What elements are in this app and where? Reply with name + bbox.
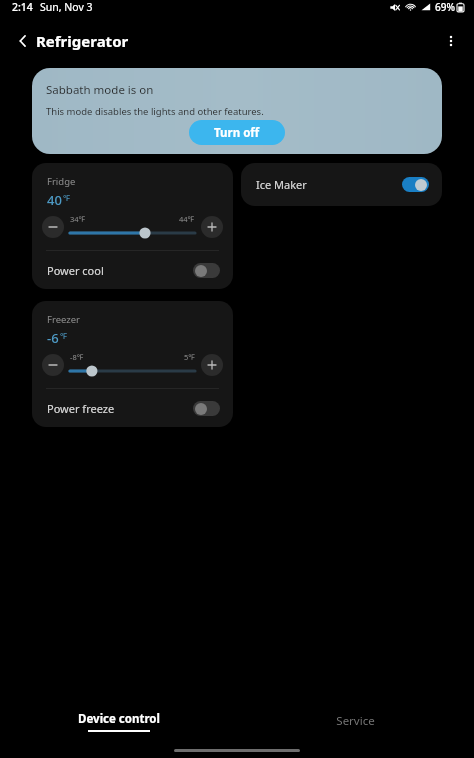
staticText: Fridge bbox=[47, 175, 76, 188]
staticText: Service bbox=[336, 713, 375, 729]
staticText: -6 bbox=[47, 329, 59, 347]
button[interactable]: Power freeze bbox=[32, 389, 233, 427]
button[interactable]: Increase bbox=[201, 216, 223, 238]
staticText: 44℉ bbox=[179, 214, 195, 224]
staticText: Power freeze bbox=[47, 401, 115, 416]
staticText: Sun, Nov 3 bbox=[40, 0, 93, 14]
button[interactable]: Decrease bbox=[42, 354, 64, 376]
button[interactable]: Turn off bbox=[189, 120, 285, 145]
button[interactable]: Power cool bbox=[32, 251, 233, 289]
button[interactable]: Increase bbox=[201, 354, 223, 376]
staticText: ℉ bbox=[63, 192, 70, 203]
button[interactable]: Toggle bbox=[402, 177, 429, 192]
staticText: 2:14 bbox=[12, 0, 33, 14]
staticText: Turn off bbox=[214, 125, 260, 141]
button[interactable]: Back bbox=[6, 24, 40, 58]
button[interactable]: Toggle bbox=[193, 401, 220, 416]
staticText: 5℉ bbox=[184, 352, 195, 362]
staticText: 34℉ bbox=[70, 214, 86, 224]
staticText: Sabbath mode is on bbox=[46, 82, 154, 98]
staticText: Ice Maker bbox=[256, 177, 307, 192]
staticText: -8℉ bbox=[70, 352, 84, 362]
staticText: Power cool bbox=[47, 263, 104, 278]
staticText: This mode disables the lights and other … bbox=[46, 105, 264, 118]
button[interactable]: More options bbox=[434, 24, 468, 58]
button[interactable]: Decrease bbox=[42, 216, 64, 238]
button[interactable]: Toggle bbox=[193, 263, 220, 278]
button[interactable]: Service bbox=[237, 700, 474, 742]
staticText: 40 bbox=[47, 191, 62, 209]
staticText: Freezer bbox=[47, 313, 81, 326]
staticText: 69% bbox=[435, 0, 455, 14]
staticText: Device control bbox=[78, 711, 160, 727]
button[interactable]: Ice Maker bbox=[241, 163, 442, 206]
button[interactable]: Device control bbox=[0, 700, 237, 742]
staticText: Refrigerator bbox=[36, 31, 129, 51]
staticText: ℉ bbox=[60, 330, 67, 341]
